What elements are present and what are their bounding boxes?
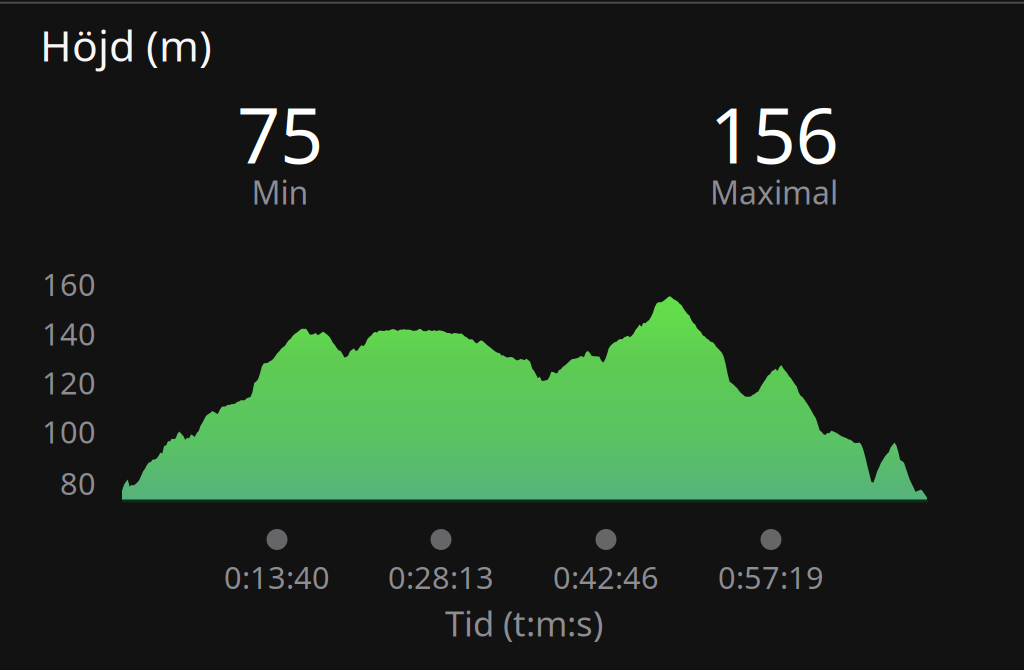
staticText: 0:28:13 bbox=[388, 557, 494, 597]
staticText: 100 bbox=[42, 411, 96, 452]
staticText: Höjd (m) bbox=[40, 17, 212, 73]
staticText: 140 bbox=[42, 313, 96, 354]
staticText: 0:57:19 bbox=[718, 557, 824, 597]
staticText: 160 bbox=[42, 264, 96, 304]
staticText: 80 bbox=[60, 463, 96, 503]
staticText: Min bbox=[251, 171, 308, 213]
button[interactable]: Höjd, minimum 75 meter, maximalt 156 met… bbox=[0, 0, 1024, 670]
staticText: Maximal bbox=[710, 171, 838, 213]
staticText: 120 bbox=[42, 362, 96, 403]
staticText: 0:42:46 bbox=[553, 557, 659, 597]
staticText: 75 bbox=[237, 83, 323, 184]
staticText: 0:13:40 bbox=[224, 557, 330, 597]
staticText: 156 bbox=[709, 83, 838, 184]
staticText: Tid (t:m:s) bbox=[445, 600, 603, 646]
